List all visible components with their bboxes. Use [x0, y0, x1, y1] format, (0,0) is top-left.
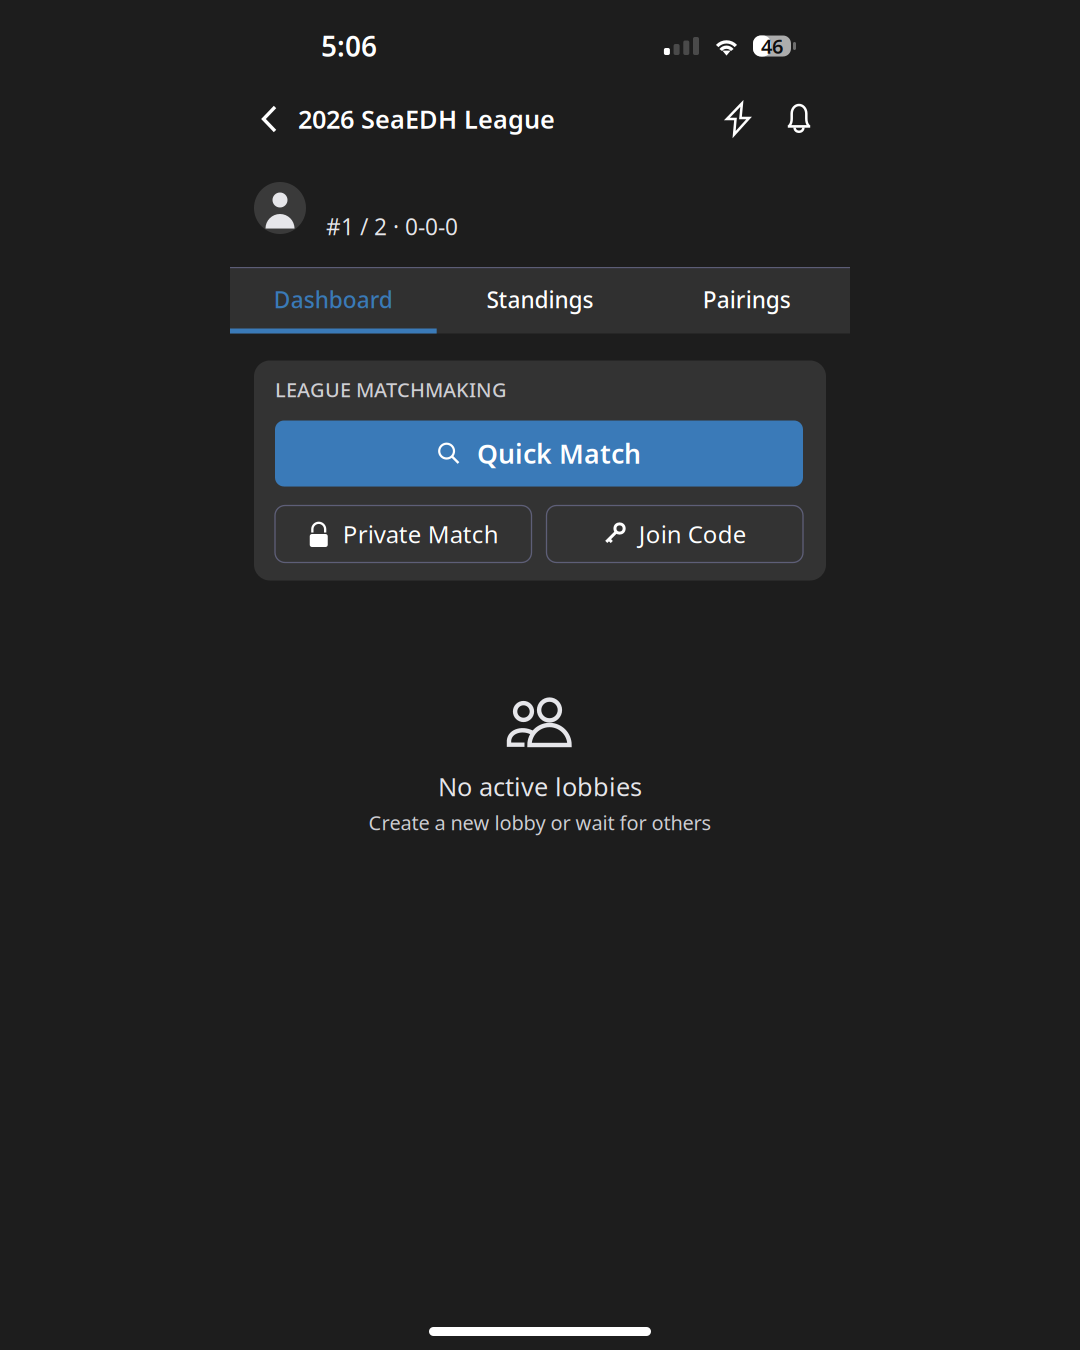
button[interactable]: Pairings: [643, 268, 850, 333]
staticText: Pairings: [703, 284, 791, 314]
staticText: 46: [761, 33, 783, 59]
staticText: Quick Match: [477, 436, 641, 471]
button[interactable]: Join Code: [546, 505, 803, 562]
button[interactable]: Private Match: [275, 505, 531, 562]
staticText: Private Match: [343, 518, 499, 550]
button[interactable]: Dashboard: [230, 268, 437, 333]
button[interactable]: Notifications: [773, 91, 825, 147]
button[interactable]: Back: [250, 91, 290, 147]
staticText: No active lobbies: [438, 770, 642, 803]
staticText: 5:06: [321, 27, 377, 65]
button[interactable]: Standings: [437, 268, 643, 333]
staticText: Join Code: [639, 518, 747, 550]
button[interactable]: Quick Match: [275, 420, 803, 486]
staticText: Create a new lobby or wait for others: [368, 809, 711, 836]
staticText: LEAGUE MATCHMAKING: [275, 376, 507, 403]
staticText: #1 / 2 · 0-0-0: [326, 211, 458, 241]
button[interactable]: #1 / 2 · 0-0-0: [230, 182, 850, 234]
button[interactable]: Boost: [712, 91, 764, 147]
staticText: Standings: [486, 284, 593, 314]
staticText: 2026 SeaEDH League: [298, 102, 555, 136]
staticText: Dashboard: [274, 284, 393, 314]
